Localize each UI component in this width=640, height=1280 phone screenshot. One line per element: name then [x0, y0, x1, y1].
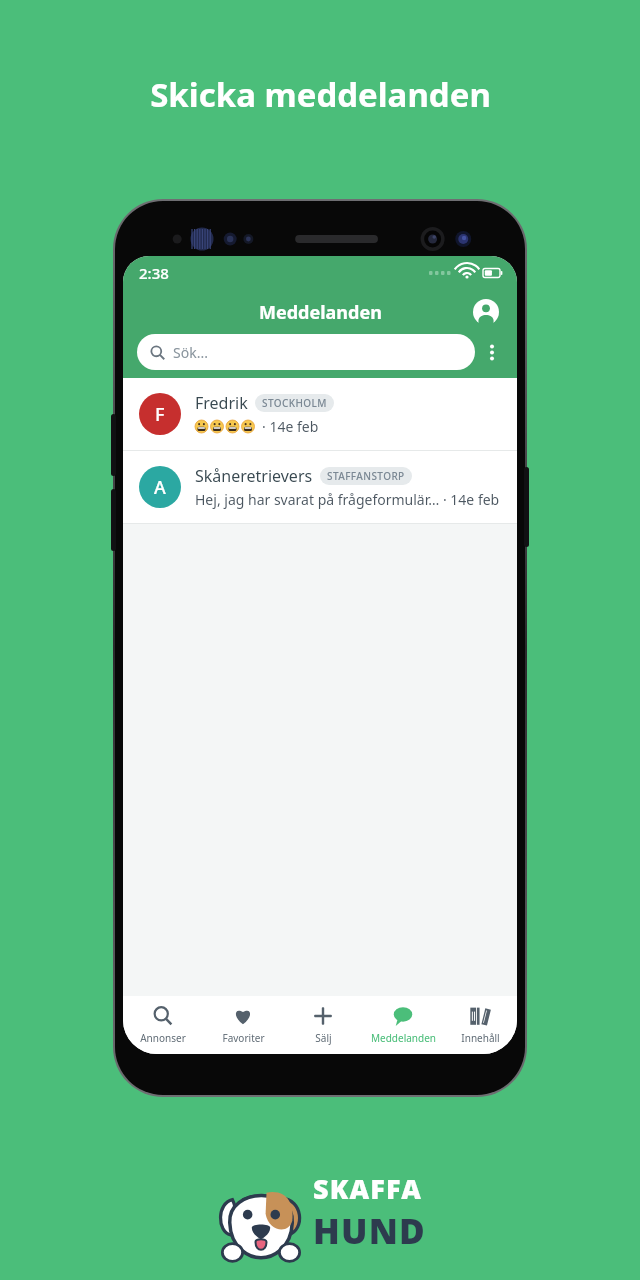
button[interactable]: Sök...: [137, 334, 475, 370]
staticText: Skicka meddelanden: [150, 72, 491, 117]
staticText: F: [155, 402, 165, 427]
staticText: HUND: [313, 1207, 426, 1255]
button[interactable]: Sälj: [283, 1001, 363, 1049]
staticText: Skåneretrievers: [195, 465, 313, 487]
staticText: Sälj: [315, 1031, 332, 1045]
staticText: STOCKHOLM: [262, 396, 327, 410]
staticText: Favoriter: [222, 1031, 265, 1045]
staticText: Meddelanden: [259, 300, 382, 325]
staticText: Sök...: [173, 343, 208, 362]
staticText: STAFFANSTORP: [327, 469, 405, 483]
button[interactable]: Favoriter: [203, 1001, 283, 1049]
staticText: SKAFFA: [313, 1170, 423, 1207]
button[interactable]: F: [123, 378, 517, 450]
staticText: · 14e feb: [262, 417, 319, 436]
button[interactable]: Annonser: [123, 1001, 203, 1049]
staticText: Annonser: [140, 1031, 186, 1045]
staticText: A: [154, 475, 166, 500]
staticText: Meddelanden: [371, 1031, 436, 1045]
button[interactable]: A: [123, 451, 517, 523]
staticText: Hej, jag har svarat på frågeformulär… · …: [195, 490, 500, 509]
button[interactable]: Meddelanden: [363, 1001, 443, 1049]
staticText: Fredrik: [195, 392, 248, 414]
button[interactable]: More options: [475, 334, 509, 370]
button[interactable]: Innehåll: [443, 1001, 517, 1049]
staticText: 2:38: [139, 263, 169, 283]
button[interactable]: Profile: [469, 295, 503, 329]
staticText: Innehåll: [461, 1031, 500, 1045]
